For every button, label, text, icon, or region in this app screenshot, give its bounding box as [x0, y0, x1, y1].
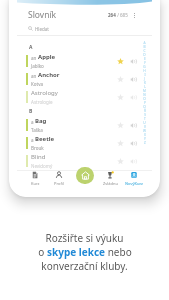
button[interactable]: Favourite: [116, 157, 125, 166]
staticText: J: [144, 77, 145, 81]
staticText: Astrology: [31, 89, 58, 97]
button[interactable]: Favourite: [116, 93, 125, 102]
staticText: Taška: [31, 127, 43, 133]
staticText: Kotva: [31, 81, 43, 87]
staticText: B: [29, 108, 33, 115]
staticText: Z: [144, 141, 146, 145]
staticText: I: [144, 73, 146, 77]
staticText: S: [144, 113, 146, 117]
staticText: B: [143, 45, 146, 49]
staticText: Slovník: [28, 9, 57, 21]
button[interactable]: Play pronunciation: [129, 93, 138, 102]
button[interactable]: Favourite: [116, 57, 125, 66]
staticText: A: [29, 44, 33, 51]
staticText: U: [143, 121, 146, 125]
staticText: Zvládnu: [103, 181, 118, 186]
button[interactable]: Home: [76, 167, 94, 184]
staticText: an: [31, 73, 37, 79]
button[interactable]: Blind: [17, 152, 152, 170]
button[interactable]: Kurz: [23, 170, 47, 187]
staticText: G: [143, 65, 146, 69]
staticText: Blind: [31, 153, 46, 161]
button[interactable]: Play pronunciation: [129, 121, 138, 130]
staticText: O: [143, 97, 146, 101]
staticText: Y: [144, 137, 146, 141]
button[interactable]: Favourite: [116, 121, 125, 130]
button[interactable]: Favourite: [116, 139, 125, 148]
staticText: K: [144, 81, 146, 85]
staticText: Astrologie: [31, 99, 53, 105]
staticText: D: [143, 53, 146, 57]
staticText: Anchor: [38, 71, 60, 79]
staticText: H: [143, 69, 146, 73]
staticText: o skype lekce nebo: [38, 245, 132, 259]
button[interactable]: Play pronunciation: [129, 75, 138, 84]
staticText: C: [143, 49, 146, 53]
staticText: Apple: [38, 53, 56, 61]
button[interactable]: Astrology: [17, 88, 152, 106]
staticText: a: [31, 137, 34, 143]
staticText: L: [144, 85, 146, 89]
staticText: NovýKurz: [125, 181, 143, 186]
button[interactable]: Play pronunciation: [129, 139, 138, 148]
staticText: Bag: [35, 117, 47, 125]
button[interactable]: Play pronunciation: [129, 157, 138, 166]
staticText: a: [31, 119, 34, 125]
button[interactable]: Profil: [47, 170, 71, 187]
staticText: konverzační kluby.: [41, 259, 128, 273]
staticText: V: [144, 125, 146, 129]
staticText: F: [144, 61, 146, 65]
button[interactable]: a: [17, 134, 152, 152]
staticText: 264: [108, 12, 116, 18]
staticText: Kurz: [31, 181, 40, 186]
staticText: Q: [143, 105, 146, 109]
staticText: an: [31, 55, 37, 61]
staticText: Hledat: [35, 26, 49, 32]
button[interactable]: a: [17, 116, 152, 134]
staticText: E: [144, 57, 146, 61]
staticText: Profil: [54, 181, 64, 186]
button[interactable]: an: [17, 70, 152, 88]
staticText: W: [143, 129, 146, 133]
button[interactable]: More options: [131, 12, 138, 19]
staticText: / 685: [116, 12, 128, 18]
button[interactable]: an: [17, 52, 152, 70]
staticText: A: [143, 41, 146, 45]
staticText: R: [144, 109, 146, 113]
staticText: Brouk: [31, 145, 44, 151]
staticText: T: [144, 117, 146, 121]
staticText: Rozšiřte si výuku: [45, 231, 124, 245]
staticText: Jablko: [31, 63, 44, 69]
staticText: M: [143, 89, 146, 93]
staticText: N: [143, 93, 146, 97]
staticText: Beetle: [35, 135, 55, 143]
button[interactable]: Play pronunciation: [129, 57, 138, 66]
button[interactable]: Zvládnu: [98, 170, 122, 187]
button[interactable]: Favourite: [116, 75, 125, 84]
staticText: P: [144, 101, 146, 105]
staticText: X: [144, 133, 146, 137]
button[interactable]: NovýKurz: [122, 170, 146, 187]
staticText: Nevidomý: [31, 163, 53, 169]
